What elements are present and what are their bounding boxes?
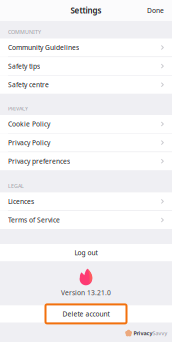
staticText: Privacy [133, 330, 152, 337]
staticText: COMMUNITY [8, 28, 41, 35]
staticText: Delete account [62, 309, 109, 318]
button[interactable]: Community Guidelines [0, 38, 172, 56]
staticText: Licences [8, 197, 34, 206]
staticText: Safety tips [8, 62, 40, 71]
staticText: Version 13.21.0 [61, 288, 111, 297]
button[interactable]: Safety centre [0, 76, 172, 94]
button[interactable]: Safety tips [0, 57, 172, 75]
staticText: Savvy [152, 330, 167, 337]
staticText: LEGAL [8, 182, 24, 189]
button[interactable]: Delete account [0, 305, 172, 322]
staticText: Done [147, 6, 164, 15]
staticText: Terms of Service [8, 216, 60, 224]
staticText: PRIVACY [8, 105, 28, 112]
button[interactable]: Privacy preferences [0, 152, 172, 170]
staticText: Log out [74, 248, 97, 257]
button[interactable]: Cookie Policy [0, 115, 172, 133]
button[interactable]: Terms of Service [0, 211, 172, 229]
staticText: Cookie Policy [8, 120, 50, 128]
button[interactable]: Log out [0, 244, 172, 261]
staticText: Privacy Policy [8, 138, 50, 147]
staticText: Privacy preferences [8, 157, 70, 166]
staticText: Settings [70, 5, 101, 16]
button[interactable]: Privacy Policy [0, 134, 172, 152]
button[interactable]: Done [139, 0, 172, 21]
button[interactable]: Licences [0, 192, 172, 210]
staticText: Community Guidelines [8, 43, 79, 52]
staticText: Safety centre [8, 80, 49, 89]
